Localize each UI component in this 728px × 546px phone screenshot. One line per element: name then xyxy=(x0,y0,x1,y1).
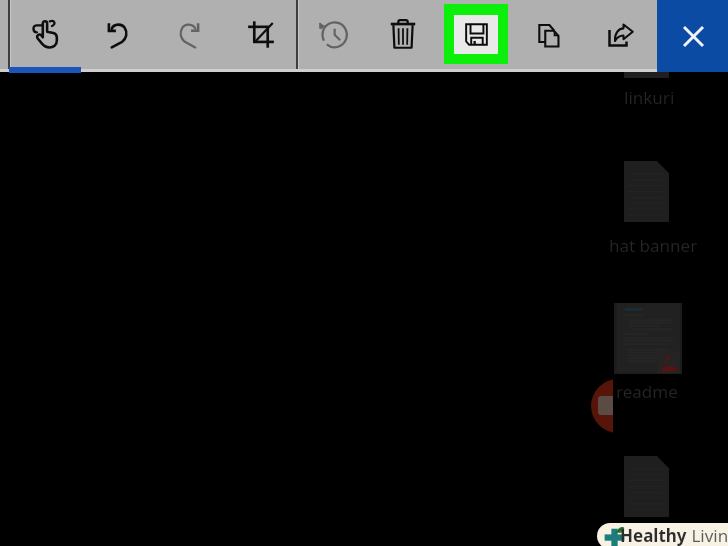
button[interactable]: readme PDF xyxy=(614,303,682,374)
button[interactable]: linkuri xyxy=(624,86,675,109)
button[interactable]: File xyxy=(624,18,669,78)
button[interactable]: Touch xyxy=(20,6,71,64)
button[interactable]: hat banner xyxy=(609,234,698,257)
button[interactable]: Healthy Living xyxy=(597,523,728,546)
button[interactable]: Copy xyxy=(526,6,572,64)
button[interactable]: History xyxy=(307,6,360,64)
staticText: Healthy xyxy=(620,524,687,546)
staticText: Living xyxy=(687,524,728,546)
button[interactable]: Crop xyxy=(235,6,287,64)
button[interactable]: File xyxy=(624,161,669,222)
button[interactable]: Delete xyxy=(378,6,428,64)
button[interactable]: Redo xyxy=(164,6,214,64)
button[interactable]: Undo xyxy=(93,6,143,64)
button[interactable]: File xyxy=(624,456,669,517)
button[interactable]: Share xyxy=(596,6,645,64)
button[interactable]: Close xyxy=(657,0,728,72)
button[interactable]: Save xyxy=(444,4,508,64)
button[interactable]: readme xyxy=(616,380,678,403)
